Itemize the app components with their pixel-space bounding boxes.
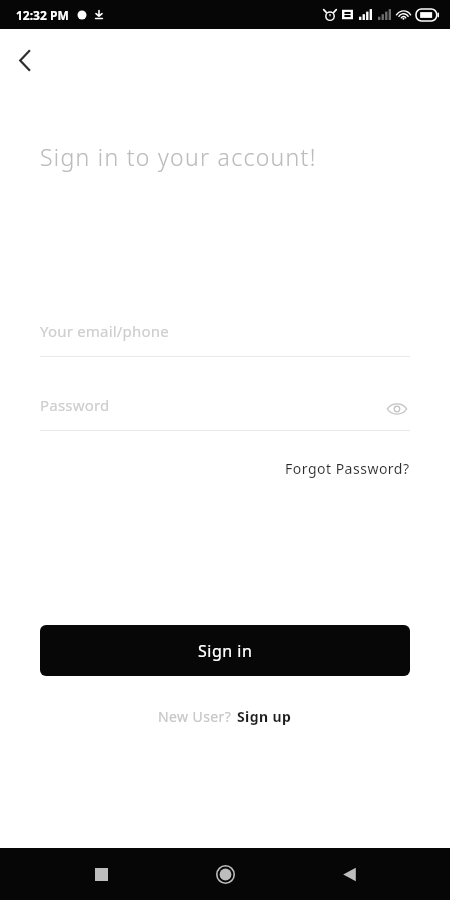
staticText: Sign in to your account! <box>40 141 317 172</box>
button[interactable]: Sign up <box>237 707 292 726</box>
button[interactable]: Your email/phone <box>40 321 410 357</box>
staticText: 12:32 PM <box>16 7 69 23</box>
button[interactable]: Back <box>7 42 43 78</box>
staticText: Sign in <box>198 640 253 662</box>
button[interactable]: Show password <box>384 396 410 422</box>
button[interactable]: Back <box>326 851 372 897</box>
button[interactable]: Forgot Password? <box>281 455 414 482</box>
staticText: Password <box>40 395 110 415</box>
staticText: Forgot Password? <box>285 459 410 478</box>
staticText: Your email/phone <box>40 321 169 341</box>
staticText: Sign up <box>237 707 292 726</box>
button[interactable]: Recents <box>78 851 124 897</box>
button[interactable]: Sign in <box>40 625 410 676</box>
button[interactable]: Home <box>202 851 248 897</box>
staticText: New User? <box>158 707 232 726</box>
button[interactable]: Password <box>40 395 410 431</box>
